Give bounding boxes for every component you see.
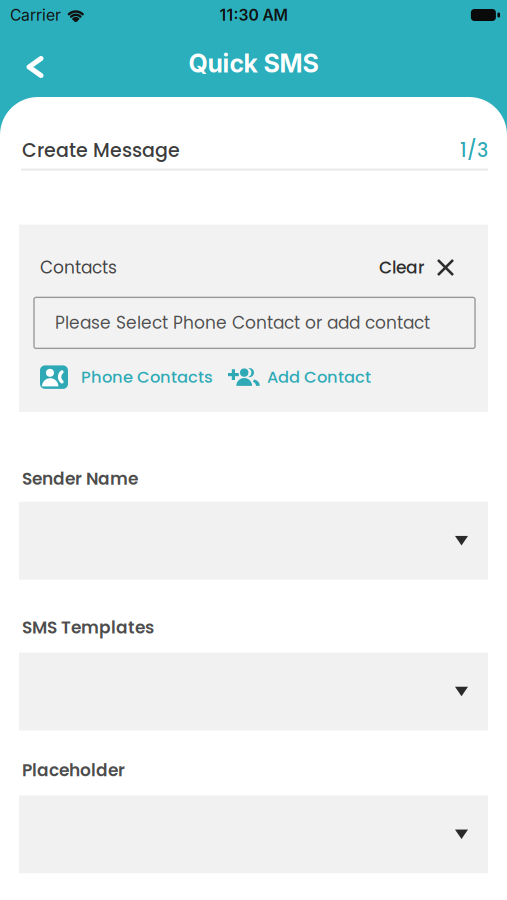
- staticText: Placeholder: [22, 758, 125, 782]
- staticText: Quick SMS: [188, 48, 318, 79]
- staticText: 1/3: [460, 137, 488, 164]
- staticText: Add Contact: [267, 366, 371, 388]
- staticText: Sender Name: [22, 467, 138, 491]
- staticText: Contacts: [40, 256, 117, 279]
- button[interactable]: Phone Contacts: [40, 365, 213, 389]
- button[interactable]: Please Select Phone Contact or add conta…: [34, 297, 475, 348]
- staticText: SMS Templates: [22, 616, 154, 639]
- staticText: Please Select Phone Contact or add conta…: [55, 311, 430, 335]
- staticText: Phone Contacts: [81, 366, 213, 388]
- button[interactable]: Sender Name: [19, 502, 488, 580]
- button[interactable]: Placeholder: [19, 795, 488, 873]
- staticText: Create Message: [22, 137, 180, 164]
- button[interactable]: Back: [0, 41, 61, 85]
- button[interactable]: SMS Templates: [19, 652, 488, 730]
- staticText: 11:30 AM: [219, 5, 287, 24]
- staticText: Carrier: [10, 5, 61, 24]
- button[interactable]: Add Contact: [228, 366, 371, 388]
- staticText: Clear: [379, 256, 425, 279]
- button[interactable]: Clear contacts: [379, 256, 453, 279]
